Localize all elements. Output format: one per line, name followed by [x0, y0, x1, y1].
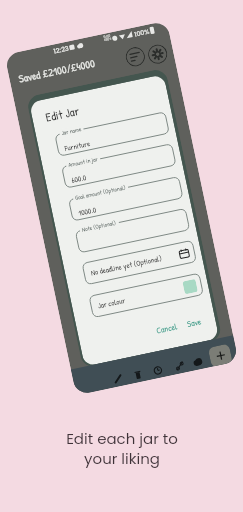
staticText: Edit Jar [44, 102, 81, 125]
button[interactable]: Add [208, 343, 233, 367]
button[interactable]: Jar colour [89, 273, 204, 318]
button[interactable]: 1000.0 [68, 176, 183, 221]
button[interactable]: No deadline yet (Optional) [82, 240, 197, 285]
button[interactable]: Edit [109, 370, 126, 387]
staticText: Jar colour [97, 295, 127, 311]
staticText: 1000.0 [77, 204, 97, 218]
staticText: Note (Optional) [81, 218, 118, 234]
button[interactable]: Furniture [54, 111, 170, 157]
staticText: No deadline yet (Optional) [90, 253, 163, 278]
button[interactable]: Cloud [189, 353, 206, 370]
staticText: Edit each jar to your liking [66, 428, 178, 470]
staticText: 12:23 [53, 43, 70, 56]
button[interactable]: Cancel [153, 320, 180, 337]
button[interactable]: 600.0 [61, 143, 176, 189]
button[interactable]: History [149, 362, 166, 378]
staticText: 600.0 [70, 172, 87, 185]
staticText: Amount in jar [67, 155, 99, 169]
staticText: 6.00 KB/s [103, 33, 113, 43]
staticText: Saved £2100/£4000 [17, 56, 96, 86]
staticText: Goal amount (Optional) [74, 183, 127, 202]
button[interactable]: Note (Optional) [75, 208, 190, 253]
staticText: 100% [133, 26, 151, 39]
button[interactable]: Stats [171, 357, 188, 374]
button[interactable]: Settings [146, 43, 169, 66]
button[interactable]: Save [184, 315, 205, 331]
button[interactable]: Delete [129, 366, 146, 383]
button[interactable]: Sort [124, 45, 147, 68]
staticText: Furniture [64, 138, 92, 153]
staticText: Jar name [61, 125, 82, 137]
